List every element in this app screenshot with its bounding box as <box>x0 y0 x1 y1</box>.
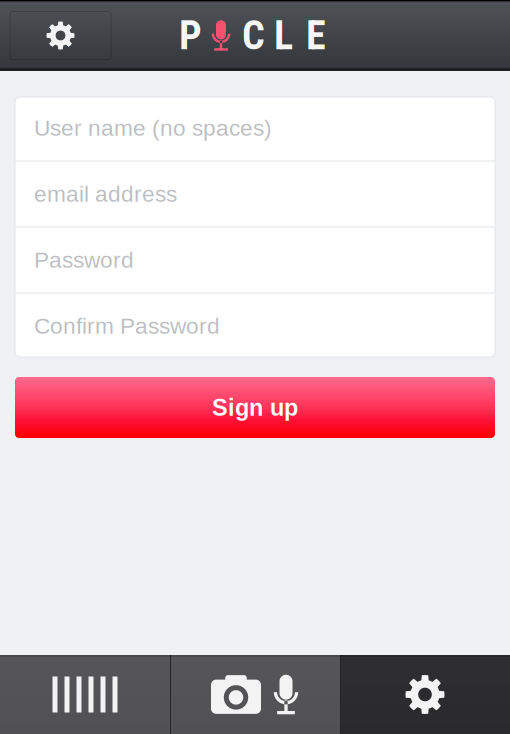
button[interactable]: Settings <box>340 655 510 734</box>
staticText: Sign up <box>212 394 298 421</box>
staticText: P <box>179 12 202 59</box>
staticText: E <box>306 12 326 59</box>
staticText: Confirm Password <box>34 313 220 339</box>
button[interactable]: Capture <box>170 655 340 734</box>
button[interactable]: Feed <box>0 655 170 734</box>
staticText: User name (no spaces) <box>34 115 272 141</box>
button[interactable]: Sign up <box>15 377 495 438</box>
button[interactable]: Settings <box>10 11 111 59</box>
staticText: L <box>274 12 293 59</box>
staticText: email address <box>34 181 177 207</box>
staticText: C <box>242 12 265 59</box>
staticText: Password <box>34 247 134 273</box>
